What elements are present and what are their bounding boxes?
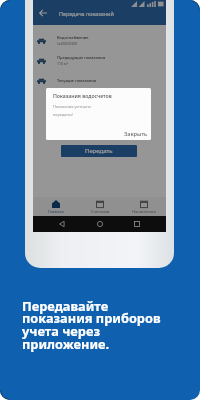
staticText: Показания водосчетов (53, 92, 112, 99)
staticText: Передавайте показания приборов учета чер… (22, 297, 161, 353)
staticText: Передача показаний (59, 10, 114, 17)
button[interactable]: Home (92, 216, 108, 232)
staticText: Закрыть (124, 130, 148, 138)
staticText: Текущие показания (57, 78, 97, 83)
button[interactable]: Начисления (122, 197, 166, 216)
staticText: Счетчики (91, 209, 110, 214)
button[interactable]: Текущие показания (33, 70, 166, 90)
button[interactable]: Предыдущие показания (33, 50, 166, 70)
button[interactable]: Главная (33, 197, 78, 216)
button[interactable]: Закрыть (122, 128, 150, 140)
staticText: Главная (48, 209, 64, 214)
staticText: Предыдущие показания (57, 55, 106, 60)
button[interactable]: Передать (61, 145, 137, 157)
staticText: Показания успешно переданы! (53, 104, 91, 117)
staticText: Начисления (132, 209, 156, 214)
staticText: №00030300 (57, 41, 78, 46)
button[interactable]: Recents (129, 216, 145, 232)
staticText: Водоснабжение (57, 35, 89, 40)
button[interactable]: Back (54, 216, 70, 232)
staticText: Передать (85, 147, 113, 155)
staticText: 110 м³ (57, 61, 69, 66)
button[interactable]: Счетчики (78, 197, 122, 216)
button[interactable]: Back (36, 6, 50, 20)
button[interactable]: Водоснабжение (33, 30, 166, 50)
